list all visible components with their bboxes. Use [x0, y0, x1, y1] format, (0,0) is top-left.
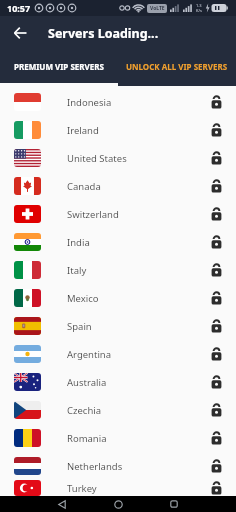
staticText: Switzerland: [67, 208, 119, 221]
staticText: Turkey: [67, 482, 97, 495]
button[interactable]: PREMIUM VIP SERVERS: [0, 50, 118, 83]
staticText: Mexico: [67, 292, 99, 305]
button[interactable]: Italy: [0, 256, 236, 284]
button[interactable]: Australia: [0, 368, 236, 396]
staticText: Netherlands: [67, 460, 123, 473]
button[interactable]: [98, 496, 138, 512]
button[interactable]: UNLOCK ALL VIP SERVERS: [118, 50, 236, 83]
button[interactable]: Indonesia: [0, 88, 236, 116]
staticText: Italy: [67, 264, 87, 277]
button[interactable]: Switzerland: [0, 200, 236, 228]
button[interactable]: Turkey: [0, 480, 236, 496]
staticText: Czechia: [67, 404, 102, 417]
staticText: 10:57: [7, 2, 31, 14]
staticText: VoLTE: [150, 5, 165, 12]
staticText: 1.3: [196, 3, 202, 8]
staticText: Romania: [67, 432, 107, 445]
button[interactable]: Netherlands: [0, 452, 236, 480]
staticText: Canada: [67, 180, 101, 193]
button[interactable]: Ireland: [0, 116, 236, 144]
staticText: Argentina: [67, 348, 112, 361]
staticText: UNLOCK ALL VIP SERVERS: [126, 61, 228, 72]
staticText: Ireland: [67, 124, 99, 137]
staticText: Servers Loading...: [48, 25, 159, 42]
staticText: Australia: [67, 376, 107, 389]
button[interactable]: Romania: [0, 424, 236, 452]
staticText: Spain: [67, 320, 92, 333]
button[interactable]: Czechia: [0, 396, 236, 424]
button[interactable]: Canada: [0, 172, 236, 200]
button[interactable]: India: [0, 228, 236, 256]
button[interactable]: Argentina: [0, 340, 236, 368]
button[interactable]: [0, 16, 40, 50]
staticText: PREMIUM VIP SERVERS: [14, 61, 104, 72]
button[interactable]: United States: [0, 144, 236, 172]
staticText: Indonesia: [67, 96, 112, 109]
button[interactable]: Spain: [0, 312, 236, 340]
staticText: India: [67, 236, 90, 249]
staticText: K/s: [196, 8, 202, 13]
button[interactable]: [154, 496, 194, 512]
button[interactable]: [42, 496, 82, 512]
staticText: United States: [67, 152, 127, 165]
button[interactable]: Mexico: [0, 284, 236, 312]
